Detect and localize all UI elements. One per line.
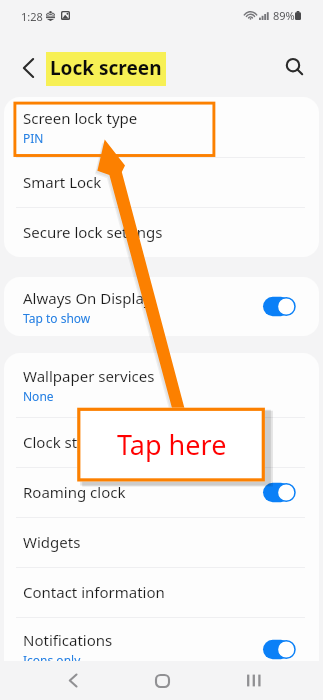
button[interactable]: Lock screen [46, 52, 166, 86]
staticText: Tap here [117, 426, 227, 463]
staticText: Lock screen [50, 55, 162, 81]
staticText: Widgets [23, 532, 300, 552]
staticText: Tap to show [23, 310, 91, 326]
button[interactable]: Always On Display [4, 277, 319, 336]
button[interactable]: Contact information [4, 567, 319, 617]
button[interactable]: Recent apps [231, 661, 276, 700]
staticText: Clock style [23, 432, 300, 452]
button[interactable]: Notifications [4, 619, 319, 679]
button[interactable]: Clock style [4, 417, 319, 467]
button[interactable]: Screen lock type [4, 97, 319, 157]
button[interactable]: Toggle on [263, 639, 300, 660]
button[interactable]: Toggle on [263, 482, 300, 503]
staticText: Smart Lock [23, 172, 300, 192]
button[interactable]: Smart Lock [4, 157, 319, 207]
staticText: Roaming clock [23, 482, 263, 502]
staticText: 89% [273, 8, 295, 23]
button[interactable]: Tap here [78, 408, 265, 481]
button[interactable]: Toggle on [263, 296, 300, 317]
staticText: None [23, 388, 54, 404]
staticText: PIN [23, 130, 44, 146]
button[interactable]: Secure lock settings [4, 207, 319, 257]
button[interactable]: Navigate up [12, 52, 44, 84]
staticText: Secure lock settings [23, 222, 300, 242]
button[interactable]: Back [50, 661, 95, 700]
staticText: Wallpaper services [23, 366, 155, 386]
staticText: Notifications [23, 630, 113, 650]
button[interactable]: Widgets [4, 517, 319, 567]
button[interactable]: Search [278, 51, 310, 83]
staticText: Icons only [23, 652, 81, 668]
button[interactable]: Roaming clock [4, 467, 319, 517]
staticText: Contact information [23, 582, 300, 602]
staticText: 1:28 [21, 9, 43, 24]
button[interactable]: Home [140, 661, 185, 700]
button[interactable]: Wallpaper services [4, 353, 319, 417]
staticText: Always On Display [23, 288, 152, 308]
staticText: Screen lock type [23, 108, 138, 128]
